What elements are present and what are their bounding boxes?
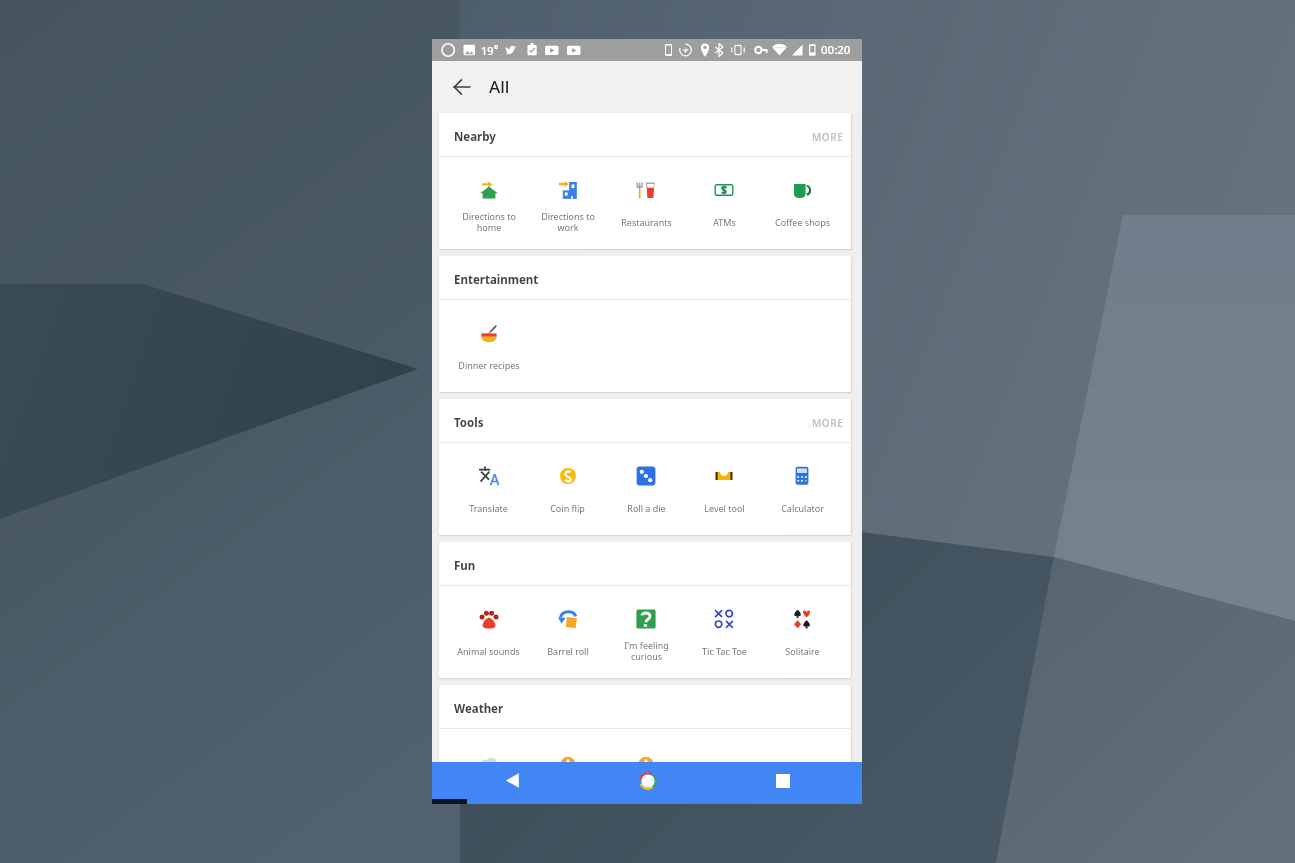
button[interactable]: Calculator xyxy=(763,443,841,535)
staticText: ATMs xyxy=(713,216,736,228)
button[interactable]: Roll a die xyxy=(607,443,685,535)
staticText: Nearby xyxy=(454,129,496,145)
button[interactable]: Coin flip xyxy=(528,443,607,535)
staticText: Weather xyxy=(454,701,504,717)
button[interactable]: Back xyxy=(446,71,478,103)
staticText: MORE xyxy=(812,416,844,430)
button[interactable]: Directions to home xyxy=(449,157,528,249)
button[interactable]: Recents xyxy=(763,762,803,799)
staticText: MORE xyxy=(812,130,844,144)
staticText: Fun xyxy=(454,558,476,574)
staticText: Roll a die xyxy=(627,502,666,514)
staticText: Directions to home xyxy=(462,210,516,234)
staticText: Tools xyxy=(454,415,484,431)
button[interactable]: Tic Tac Toe xyxy=(685,586,763,678)
staticText: Coffee shops xyxy=(775,216,830,228)
button[interactable]: Cloudy xyxy=(449,729,528,762)
button[interactable]: I'm feeling curious xyxy=(607,586,685,678)
button[interactable]: Solitaire xyxy=(763,586,841,678)
staticText: Level tool xyxy=(704,502,745,514)
staticText: Directions to work xyxy=(541,210,595,234)
staticText: Entertainment xyxy=(454,272,539,288)
staticText: All xyxy=(489,75,510,98)
button[interactable]: Directions to work xyxy=(528,157,607,249)
button[interactable]: Dinner recipes xyxy=(449,300,528,392)
button[interactable]: Restaurants xyxy=(607,157,685,249)
staticText: Solitaire xyxy=(785,645,820,657)
staticText: Tic Tac Toe xyxy=(702,645,747,657)
staticText: Animal sounds xyxy=(457,645,520,657)
staticText: Translate xyxy=(469,502,508,514)
button[interactable]: Coffee shops xyxy=(763,157,841,249)
staticText: Barrel roll xyxy=(547,645,589,657)
staticText: 19 xyxy=(481,43,494,58)
button[interactable]: Animal sounds xyxy=(449,586,528,678)
button[interactable]: Level tool xyxy=(685,443,763,535)
button[interactable]: Translate xyxy=(449,443,528,535)
button[interactable]: Sunset xyxy=(607,729,685,762)
button[interactable]: Back xyxy=(492,762,533,799)
staticText: 00:20 xyxy=(821,42,851,58)
button[interactable]: Sunrise xyxy=(528,729,607,762)
button[interactable]: Home xyxy=(628,762,668,799)
button[interactable]: MORE xyxy=(806,122,850,152)
staticText: Dinner recipes xyxy=(458,359,520,371)
staticText: Restaurants xyxy=(621,216,672,228)
staticText: o xyxy=(494,42,499,52)
staticText: Coin flip xyxy=(550,502,585,514)
button[interactable]: Barrel roll xyxy=(528,586,607,678)
button[interactable]: ATMs xyxy=(685,157,763,249)
staticText: I'm feeling curious xyxy=(624,639,669,663)
button[interactable]: MORE xyxy=(806,408,850,438)
staticText: Calculator xyxy=(781,502,824,514)
